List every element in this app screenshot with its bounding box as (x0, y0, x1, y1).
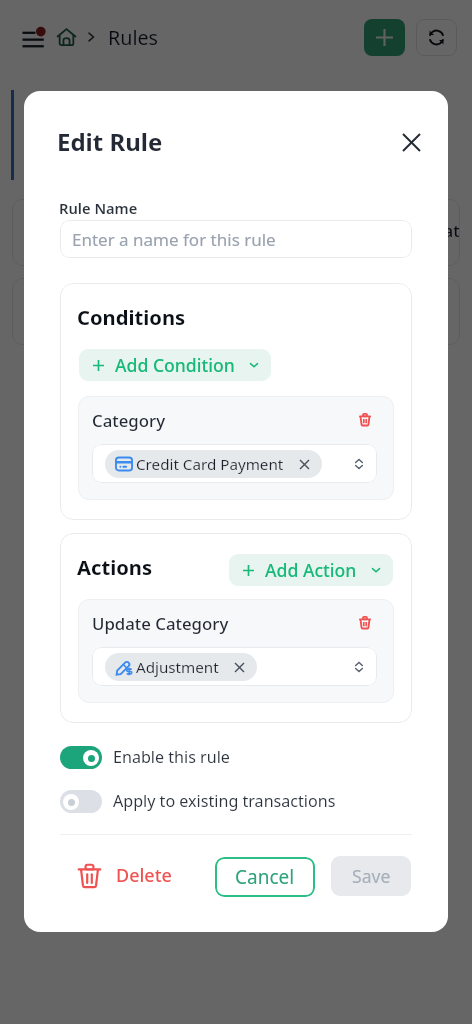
staticText: Cancel (235, 864, 295, 890)
button[interactable]: Home (53, 24, 79, 50)
staticText: Credit Card Payment (136, 454, 284, 475)
staticText: Rules (108, 24, 159, 51)
button[interactable]: Enter a name for this rule (60, 220, 412, 258)
button[interactable]: Remove (353, 610, 377, 634)
button[interactable]: Credit Card Payment (92, 444, 377, 483)
staticText: Update Category (92, 612, 229, 635)
button[interactable]: Cancel (215, 857, 315, 897)
staticText: Rule Name (59, 198, 138, 218)
staticText: Adjustment (136, 657, 219, 678)
button[interactable]: Enable this rule (60, 745, 230, 769)
button[interactable]: Adjustment (92, 647, 377, 686)
button[interactable]: Menu (19, 23, 47, 51)
staticText: Actions (77, 553, 153, 581)
staticText: Delete (116, 863, 172, 888)
staticText: Add Condition (115, 353, 235, 377)
staticText: Enter a name for this rule (72, 228, 276, 251)
button[interactable]: Apply to existing transactions (60, 789, 336, 813)
button[interactable]: Save (331, 856, 411, 896)
button[interactable]: Close dialog (395, 126, 427, 158)
button[interactable]: Add Condition (79, 349, 271, 381)
staticText: Conditions (77, 303, 186, 331)
staticText: Category (92, 409, 165, 432)
staticText: Enable this rule (113, 746, 230, 768)
button[interactable]: Delete (68, 855, 182, 895)
staticText: Add Action (265, 558, 357, 582)
button[interactable]: Add rule (364, 19, 405, 56)
staticText: Rule: categorize coffee shops as eat (170, 219, 460, 242)
staticText: Edit Rule (57, 125, 163, 158)
staticText: Apply to existing transactions (113, 790, 336, 812)
staticText: Save (352, 864, 391, 888)
button[interactable]: Remove (353, 407, 377, 431)
button[interactable]: Refresh (416, 19, 457, 56)
button[interactable]: Add Action (229, 554, 393, 586)
